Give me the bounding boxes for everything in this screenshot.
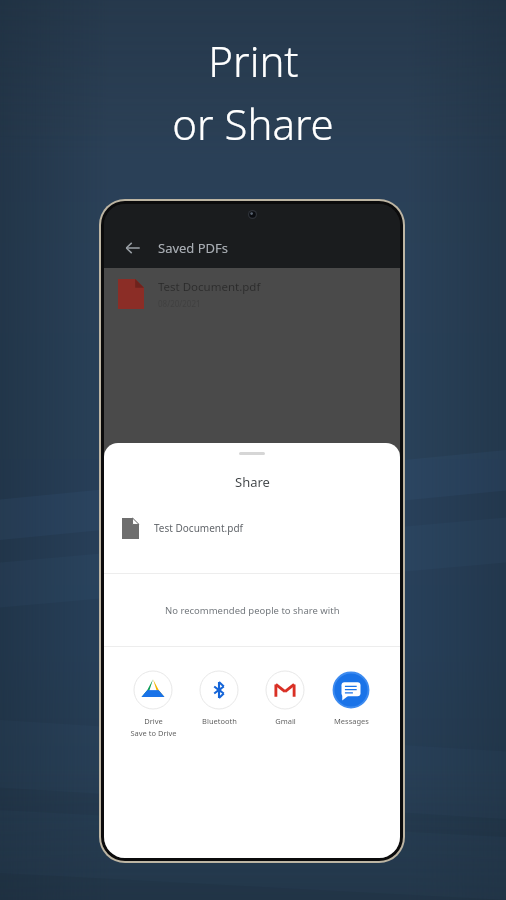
staticText: Share bbox=[235, 473, 270, 491]
staticText: Drive bbox=[144, 716, 163, 726]
button[interactable]: Back bbox=[122, 237, 144, 259]
button[interactable]: Bluetooth bbox=[186, 669, 252, 728]
staticText: Print bbox=[208, 32, 299, 89]
staticText: Messages bbox=[334, 716, 369, 726]
staticText: No recommended people to share with bbox=[165, 604, 340, 617]
staticText: Test Document.pdf bbox=[154, 521, 244, 535]
staticText: Bluetooth bbox=[202, 716, 237, 726]
staticText: or Share bbox=[172, 95, 334, 152]
button[interactable]: Messages bbox=[318, 669, 384, 728]
staticText: Save to Drive bbox=[130, 728, 177, 738]
staticText: Test Document.pdf bbox=[158, 279, 261, 295]
button[interactable]: Test Document.pdf bbox=[104, 268, 400, 320]
button[interactable]: Drive bbox=[120, 669, 186, 740]
staticText: Saved PDFs bbox=[158, 239, 229, 257]
button[interactable]: Test Document.pdf bbox=[104, 511, 400, 545]
staticText: Gmail bbox=[275, 716, 296, 726]
button[interactable]: Gmail bbox=[252, 669, 318, 728]
button[interactable]: Back bbox=[104, 228, 400, 268]
